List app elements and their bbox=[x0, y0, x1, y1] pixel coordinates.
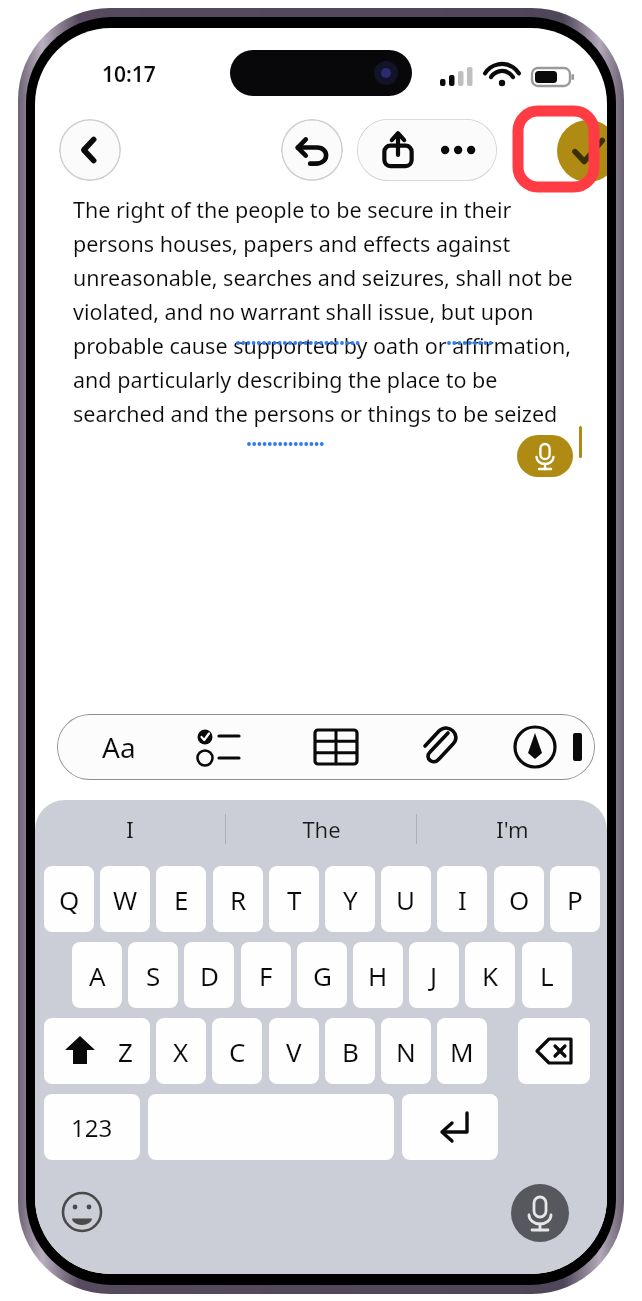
staticText: K bbox=[482, 958, 499, 993]
staticText: 10:17 bbox=[102, 60, 156, 89]
button[interactable]: G bbox=[297, 942, 347, 1008]
staticText: T bbox=[287, 882, 302, 917]
staticText: U bbox=[396, 882, 416, 917]
button[interactable]: Table bbox=[300, 714, 372, 780]
staticText: 123 bbox=[71, 1111, 113, 1144]
button[interactable]: X bbox=[156, 1018, 206, 1084]
staticText: unreasonable, searches and seizures, sha… bbox=[73, 263, 573, 292]
button[interactable]: More bbox=[429, 119, 491, 181]
button[interactable]: T bbox=[269, 866, 319, 932]
staticText: A bbox=[89, 958, 106, 993]
staticText: L bbox=[540, 958, 554, 993]
button[interactable]: P bbox=[550, 866, 600, 932]
staticText: W bbox=[113, 882, 138, 917]
button[interactable]: V bbox=[269, 1018, 319, 1084]
staticText: C bbox=[229, 1034, 246, 1069]
staticText: Q bbox=[59, 882, 80, 917]
staticText: X bbox=[173, 1034, 189, 1069]
staticText: Z bbox=[118, 1034, 133, 1069]
button[interactable]: E bbox=[156, 866, 206, 932]
button[interactable]: N bbox=[381, 1018, 431, 1084]
button[interactable]: 123 bbox=[44, 1094, 140, 1160]
button[interactable]: B bbox=[325, 1018, 375, 1084]
staticText: N bbox=[396, 1034, 416, 1069]
staticText: P bbox=[567, 882, 583, 917]
staticText: R bbox=[230, 882, 247, 917]
staticText: violated, and no warrant shall issue, bu… bbox=[73, 297, 534, 326]
button[interactable]: Markup bbox=[499, 714, 571, 780]
button[interactable]: J bbox=[409, 942, 459, 1008]
button[interactable]: Share bbox=[367, 119, 429, 181]
staticText: persons houses, papers and effects again… bbox=[73, 229, 511, 258]
button[interactable]: I bbox=[35, 800, 225, 858]
button[interactable]: W bbox=[100, 866, 150, 932]
button[interactable]: Undo bbox=[281, 119, 343, 181]
button[interactable]: Emoji bbox=[60, 1190, 104, 1234]
button[interactable]: C bbox=[212, 1018, 262, 1084]
button[interactable]: I'm bbox=[417, 800, 607, 858]
staticText: G bbox=[313, 958, 332, 993]
staticText: Aa bbox=[102, 728, 136, 766]
button[interactable]: F bbox=[241, 942, 291, 1008]
staticText: I bbox=[458, 882, 467, 917]
staticText: The bbox=[302, 814, 341, 844]
button[interactable]: K bbox=[465, 942, 515, 1008]
button[interactable]: H bbox=[353, 942, 403, 1008]
button[interactable]: Q bbox=[44, 866, 94, 932]
staticText: Y bbox=[343, 882, 358, 917]
staticText: H bbox=[368, 958, 388, 993]
button[interactable]: O bbox=[494, 866, 544, 932]
button[interactable]: L bbox=[522, 942, 572, 1008]
staticText: and particularly describing the place to… bbox=[73, 365, 498, 394]
button[interactable]: Done bbox=[557, 120, 607, 182]
button[interactable]: D bbox=[184, 942, 234, 1008]
button[interactable]: Dictation bbox=[511, 1184, 569, 1242]
staticText: B bbox=[342, 1034, 359, 1069]
button[interactable]: R bbox=[213, 866, 263, 932]
staticText: J bbox=[430, 958, 438, 993]
staticText: F bbox=[259, 958, 273, 993]
button[interactable]: Z bbox=[100, 1018, 150, 1084]
button[interactable]: shift bbox=[44, 1018, 116, 1084]
staticText: M bbox=[450, 1034, 474, 1069]
staticText: I bbox=[126, 814, 134, 844]
button[interactable]: M bbox=[437, 1018, 487, 1084]
button[interactable]: S bbox=[128, 942, 178, 1008]
staticText: O bbox=[509, 882, 530, 917]
staticText: D bbox=[200, 958, 219, 993]
button[interactable]: return bbox=[402, 1094, 498, 1160]
button[interactable]: Back bbox=[59, 119, 121, 181]
staticText: searched and the persons or things to be… bbox=[73, 399, 558, 428]
button[interactable]: A bbox=[72, 942, 122, 1008]
button[interactable]: The bbox=[226, 800, 416, 858]
button[interactable]: Aa bbox=[79, 714, 159, 780]
button[interactable]: Y bbox=[325, 866, 375, 932]
button[interactable]: I bbox=[437, 866, 487, 932]
staticText: I'm bbox=[496, 814, 529, 844]
button[interactable]: U bbox=[381, 866, 431, 932]
button[interactable]: Attach bbox=[402, 714, 474, 780]
button[interactable]: Checklist bbox=[179, 714, 255, 780]
staticText: probable cause supported by oath or affi… bbox=[73, 331, 572, 360]
staticText: The right of the people to be secure in … bbox=[73, 195, 512, 224]
button[interactable]: backspace bbox=[518, 1018, 590, 1084]
staticText: E bbox=[174, 882, 189, 917]
staticText: S bbox=[146, 958, 161, 993]
staticText: V bbox=[286, 1034, 302, 1069]
button[interactable]: Dictate bbox=[517, 435, 573, 477]
